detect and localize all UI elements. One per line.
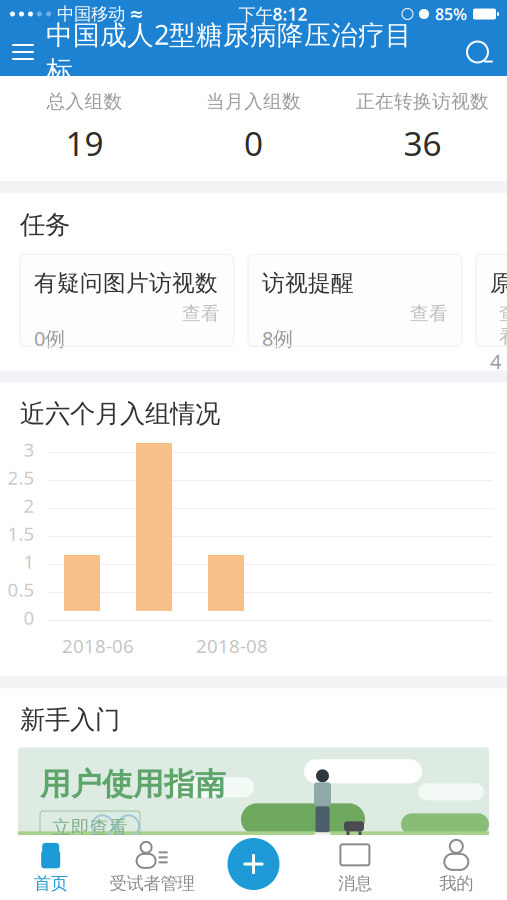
staticText: 查看: [499, 302, 507, 348]
staticText: 0: [23, 605, 34, 630]
staticText: 8例: [262, 325, 293, 352]
staticText: 2: [23, 493, 34, 518]
staticText: 总入组数: [46, 90, 122, 113]
staticText: 4: [490, 348, 501, 375]
staticText: 36: [403, 121, 441, 165]
staticText: 中国成人2型糖尿病降压治疗目标...: [46, 17, 412, 87]
staticText: 2018-08: [196, 633, 268, 658]
staticText: 受试者管理: [110, 873, 195, 894]
staticText: 0: [244, 121, 263, 165]
staticText: 正在转换访视数: [356, 90, 489, 113]
staticText: 中国移动: [57, 3, 125, 25]
button[interactable]: 我的: [406, 835, 507, 900]
staticText: 首页: [34, 873, 68, 894]
staticText: 0.5: [7, 577, 34, 602]
staticText: ≈: [129, 4, 144, 24]
staticText: 我的: [439, 873, 473, 894]
staticText: 查看: [410, 302, 448, 325]
staticText: 当月入组数: [206, 90, 301, 113]
staticText: 近六个月入组情况: [20, 398, 220, 429]
button[interactable]: 原: [476, 254, 507, 346]
button[interactable]: 受试者管理: [101, 835, 203, 900]
staticText: 立即查看: [52, 816, 128, 839]
button[interactable]: Menu: [0, 28, 46, 76]
button[interactable]: 首页: [0, 835, 101, 900]
staticText: 用户使用指南: [40, 765, 226, 803]
staticText: 有疑问图片访视数: [34, 269, 218, 297]
button[interactable]: 有疑问图片访视数: [20, 254, 234, 346]
staticText: 1.5: [7, 521, 34, 546]
staticText: 3: [23, 437, 34, 462]
staticText: 0例: [34, 325, 65, 352]
staticText: 查看: [182, 302, 220, 325]
staticText: 2018-06: [62, 633, 134, 658]
staticText: 新手入门: [20, 704, 120, 735]
staticText: 1: [23, 549, 34, 574]
staticText: 2.5: [7, 465, 34, 490]
button[interactable]: 访视提醒: [248, 254, 462, 346]
staticText: 19: [65, 121, 103, 165]
button[interactable]: Add: [227, 838, 279, 890]
staticText: 任务: [20, 209, 70, 240]
button[interactable]: Search: [453, 28, 507, 76]
staticText: 原: [490, 269, 507, 297]
button[interactable]: 消息: [304, 835, 406, 900]
staticText: 下午8:12: [238, 2, 307, 25]
button[interactable]: 用户使用指南: [18, 747, 489, 857]
staticText: 访视提醒: [262, 269, 354, 297]
staticText: 消息: [338, 873, 372, 894]
staticText: 85%: [435, 3, 467, 25]
